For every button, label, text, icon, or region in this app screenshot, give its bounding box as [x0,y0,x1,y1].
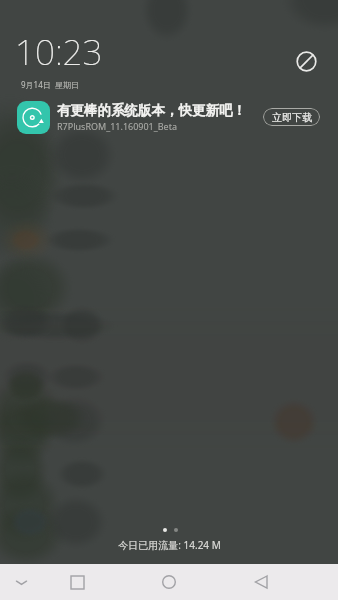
button[interactable]: Hide [6,564,36,600]
staticText: 立即下载 [272,111,312,124]
button[interactable]: 立即下载 [263,108,320,126]
staticText: 今日已用流量: 14.24 M [118,538,221,552]
button[interactable]: Back [241,564,281,600]
button[interactable]: Do not disturb [293,48,319,74]
staticText: 10:23 [15,28,103,76]
staticText: 有更棒的系统版本，快更新吧！ [57,102,246,119]
button[interactable]: Recent apps [57,564,97,600]
staticText: 9月14日 星期日 [21,79,79,90]
staticText: R7PlusROM_11.160901_Beta [57,120,177,132]
button[interactable]: Home [149,564,189,600]
button[interactable]: 有更棒的系统版本，快更新吧！ [0,100,338,134]
